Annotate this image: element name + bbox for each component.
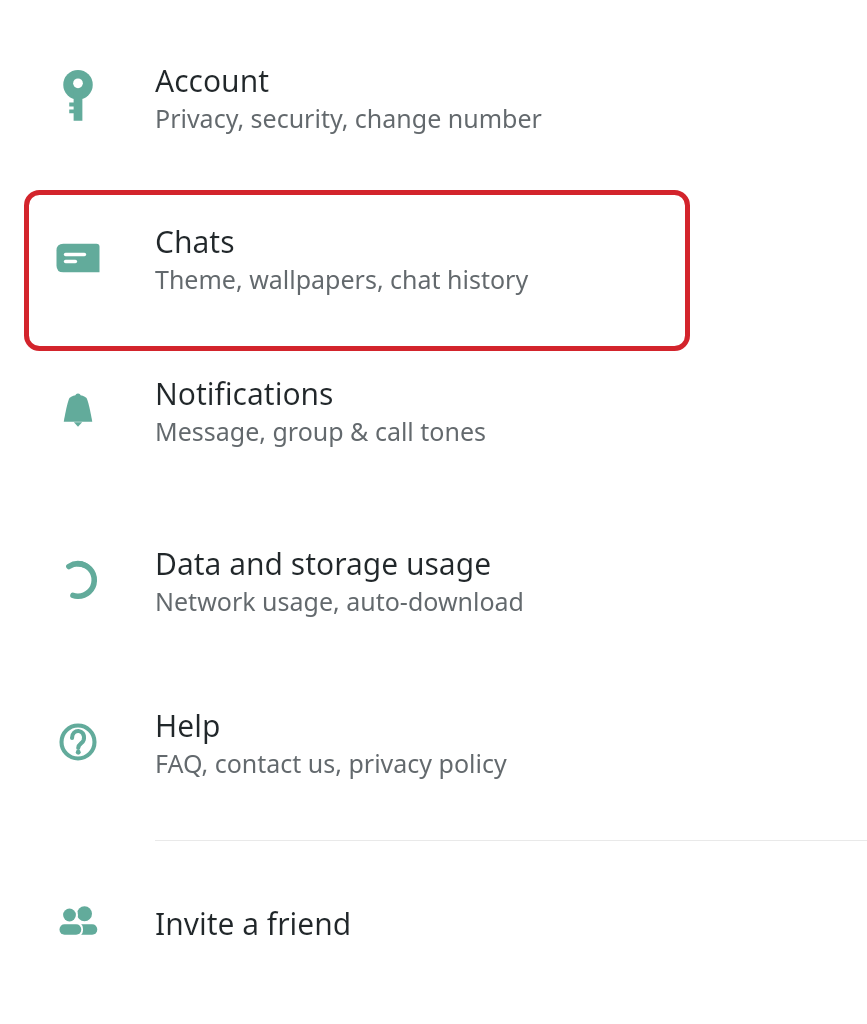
other: Data and storage usage <box>53 555 103 605</box>
other: Account <box>53 72 103 122</box>
staticText: Notifications <box>155 373 334 414</box>
staticText: Chats <box>155 221 235 262</box>
staticText: Message, group & call tones <box>155 414 486 448</box>
other: Invite a friend <box>53 898 103 948</box>
button[interactable]: Chats highlighted <box>24 190 690 351</box>
staticText: Data and storage usage <box>155 543 492 584</box>
button[interactable]: Chats <box>0 213 867 303</box>
staticText: Theme, wallpapers, chat history <box>155 262 529 296</box>
staticText: Privacy, security, change number <box>155 101 542 135</box>
button[interactable]: Account <box>0 52 867 142</box>
button[interactable]: Invite a friend <box>0 898 867 948</box>
other: Notifications <box>53 385 103 435</box>
other: Help <box>53 717 103 767</box>
staticText: Network usage, auto-download <box>155 584 524 618</box>
button[interactable]: Notifications <box>0 365 867 455</box>
staticText: Account <box>155 60 270 101</box>
staticText: Invite a friend <box>155 903 352 944</box>
staticText: FAQ, contact us, privacy policy <box>155 746 507 780</box>
button[interactable]: Data and storage usage <box>0 535 867 625</box>
other: Chats <box>53 233 103 283</box>
staticText: Help <box>155 705 221 746</box>
button[interactable]: Help <box>0 697 867 787</box>
